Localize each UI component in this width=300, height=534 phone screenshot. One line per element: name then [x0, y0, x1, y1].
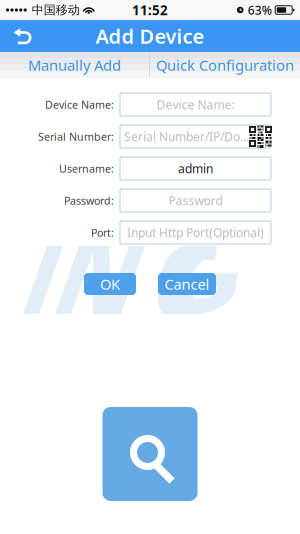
staticText: 中国移动 — [32, 3, 80, 17]
staticText: OK — [100, 274, 120, 294]
button[interactable]: Quick Configuration — [150, 52, 300, 78]
staticText: Manually Add — [28, 55, 121, 75]
button[interactable]: Back — [0, 20, 44, 52]
staticText: Username: — [59, 161, 114, 176]
staticText: Serial Number: — [38, 129, 114, 144]
staticText: Input Http Port(Optional) — [127, 224, 264, 240]
staticText: 11:52 — [132, 1, 168, 19]
staticText: Password — [168, 192, 222, 208]
button[interactable]: Search — [102, 407, 197, 501]
staticText: Password: — [64, 193, 114, 208]
staticText: Port: — [91, 225, 114, 240]
button[interactable]: Manually Add — [0, 52, 149, 78]
staticText: 63% — [248, 2, 272, 18]
staticText: Quick Configuration — [156, 55, 294, 75]
button[interactable]: Cancel — [158, 273, 216, 295]
button[interactable]: Scan QR code — [249, 126, 272, 147]
staticText: Add Device — [95, 23, 204, 49]
staticText: Device Name: — [156, 96, 234, 112]
button[interactable]: OK — [84, 273, 136, 295]
staticText: Device Name: — [45, 97, 114, 112]
staticText: Serial Number/IP/Do... — [124, 128, 249, 144]
staticText: admin — [178, 160, 213, 176]
staticText: Cancel — [164, 274, 209, 294]
